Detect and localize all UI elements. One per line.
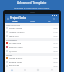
staticText: 13:00 [53, 35, 58, 37]
staticText: 11:30 [53, 31, 58, 33]
staticText: Advanced Template [17, 1, 47, 5]
button[interactable]: Search [52, 17, 55, 20]
staticText: 16:00 [53, 50, 58, 52]
button[interactable]: Team sync [5, 34, 59, 38]
button[interactable]: Today [6, 20, 24, 23]
staticText: 10:00 [53, 27, 58, 29]
button[interactable]: Update API docs [5, 30, 59, 34]
staticText: Merge branch [9, 57, 53, 60]
staticText: Refactor client [9, 46, 53, 49]
button[interactable]: Profile [45, 67, 59, 72]
staticText: Today [12, 20, 18, 23]
button[interactable]: Week [24, 20, 41, 23]
staticText: Design review [9, 27, 53, 30]
button[interactable]: Retro prep [5, 64, 59, 67]
button[interactable]: All [41, 20, 58, 23]
staticText: 18:00 [53, 61, 58, 63]
staticText: Project Tasks [10, 16, 27, 20]
staticText: SPRINT BACKLOG [6, 24, 21, 26]
button[interactable]: Merge branch [5, 56, 59, 60]
staticText: 19:00 [53, 65, 58, 67]
button[interactable]: More options [55, 17, 58, 20]
staticText: Team sync [9, 35, 53, 38]
staticText: Release notes [9, 61, 53, 64]
button[interactable]: Refactor client [5, 45, 59, 49]
staticText: QA pass [9, 50, 53, 53]
button[interactable]: Home [5, 67, 18, 72]
button[interactable]: Fix login bug [5, 41, 59, 45]
staticText: Retro prep [9, 64, 53, 67]
staticText: IN PROGRESS [6, 39, 17, 41]
staticText: 15:00 [53, 46, 58, 48]
staticText: Manage & track with your team [14, 6, 50, 9]
staticText: All [48, 20, 51, 23]
button[interactable]: Design review [5, 26, 59, 30]
button[interactable]: Add [31, 67, 45, 72]
button[interactable]: QA pass [5, 49, 59, 53]
staticText: 17:20 [53, 57, 58, 59]
button[interactable]: Tasks [18, 67, 31, 72]
staticText: Week [30, 20, 36, 23]
staticText: Update API docs [9, 31, 53, 34]
staticText: REVIEW [6, 54, 13, 56]
staticText: 14:15 [53, 42, 58, 44]
staticText: Fix login bug [9, 42, 53, 45]
button[interactable]: Menu [6, 17, 9, 20]
button[interactable]: Release notes [5, 60, 59, 64]
